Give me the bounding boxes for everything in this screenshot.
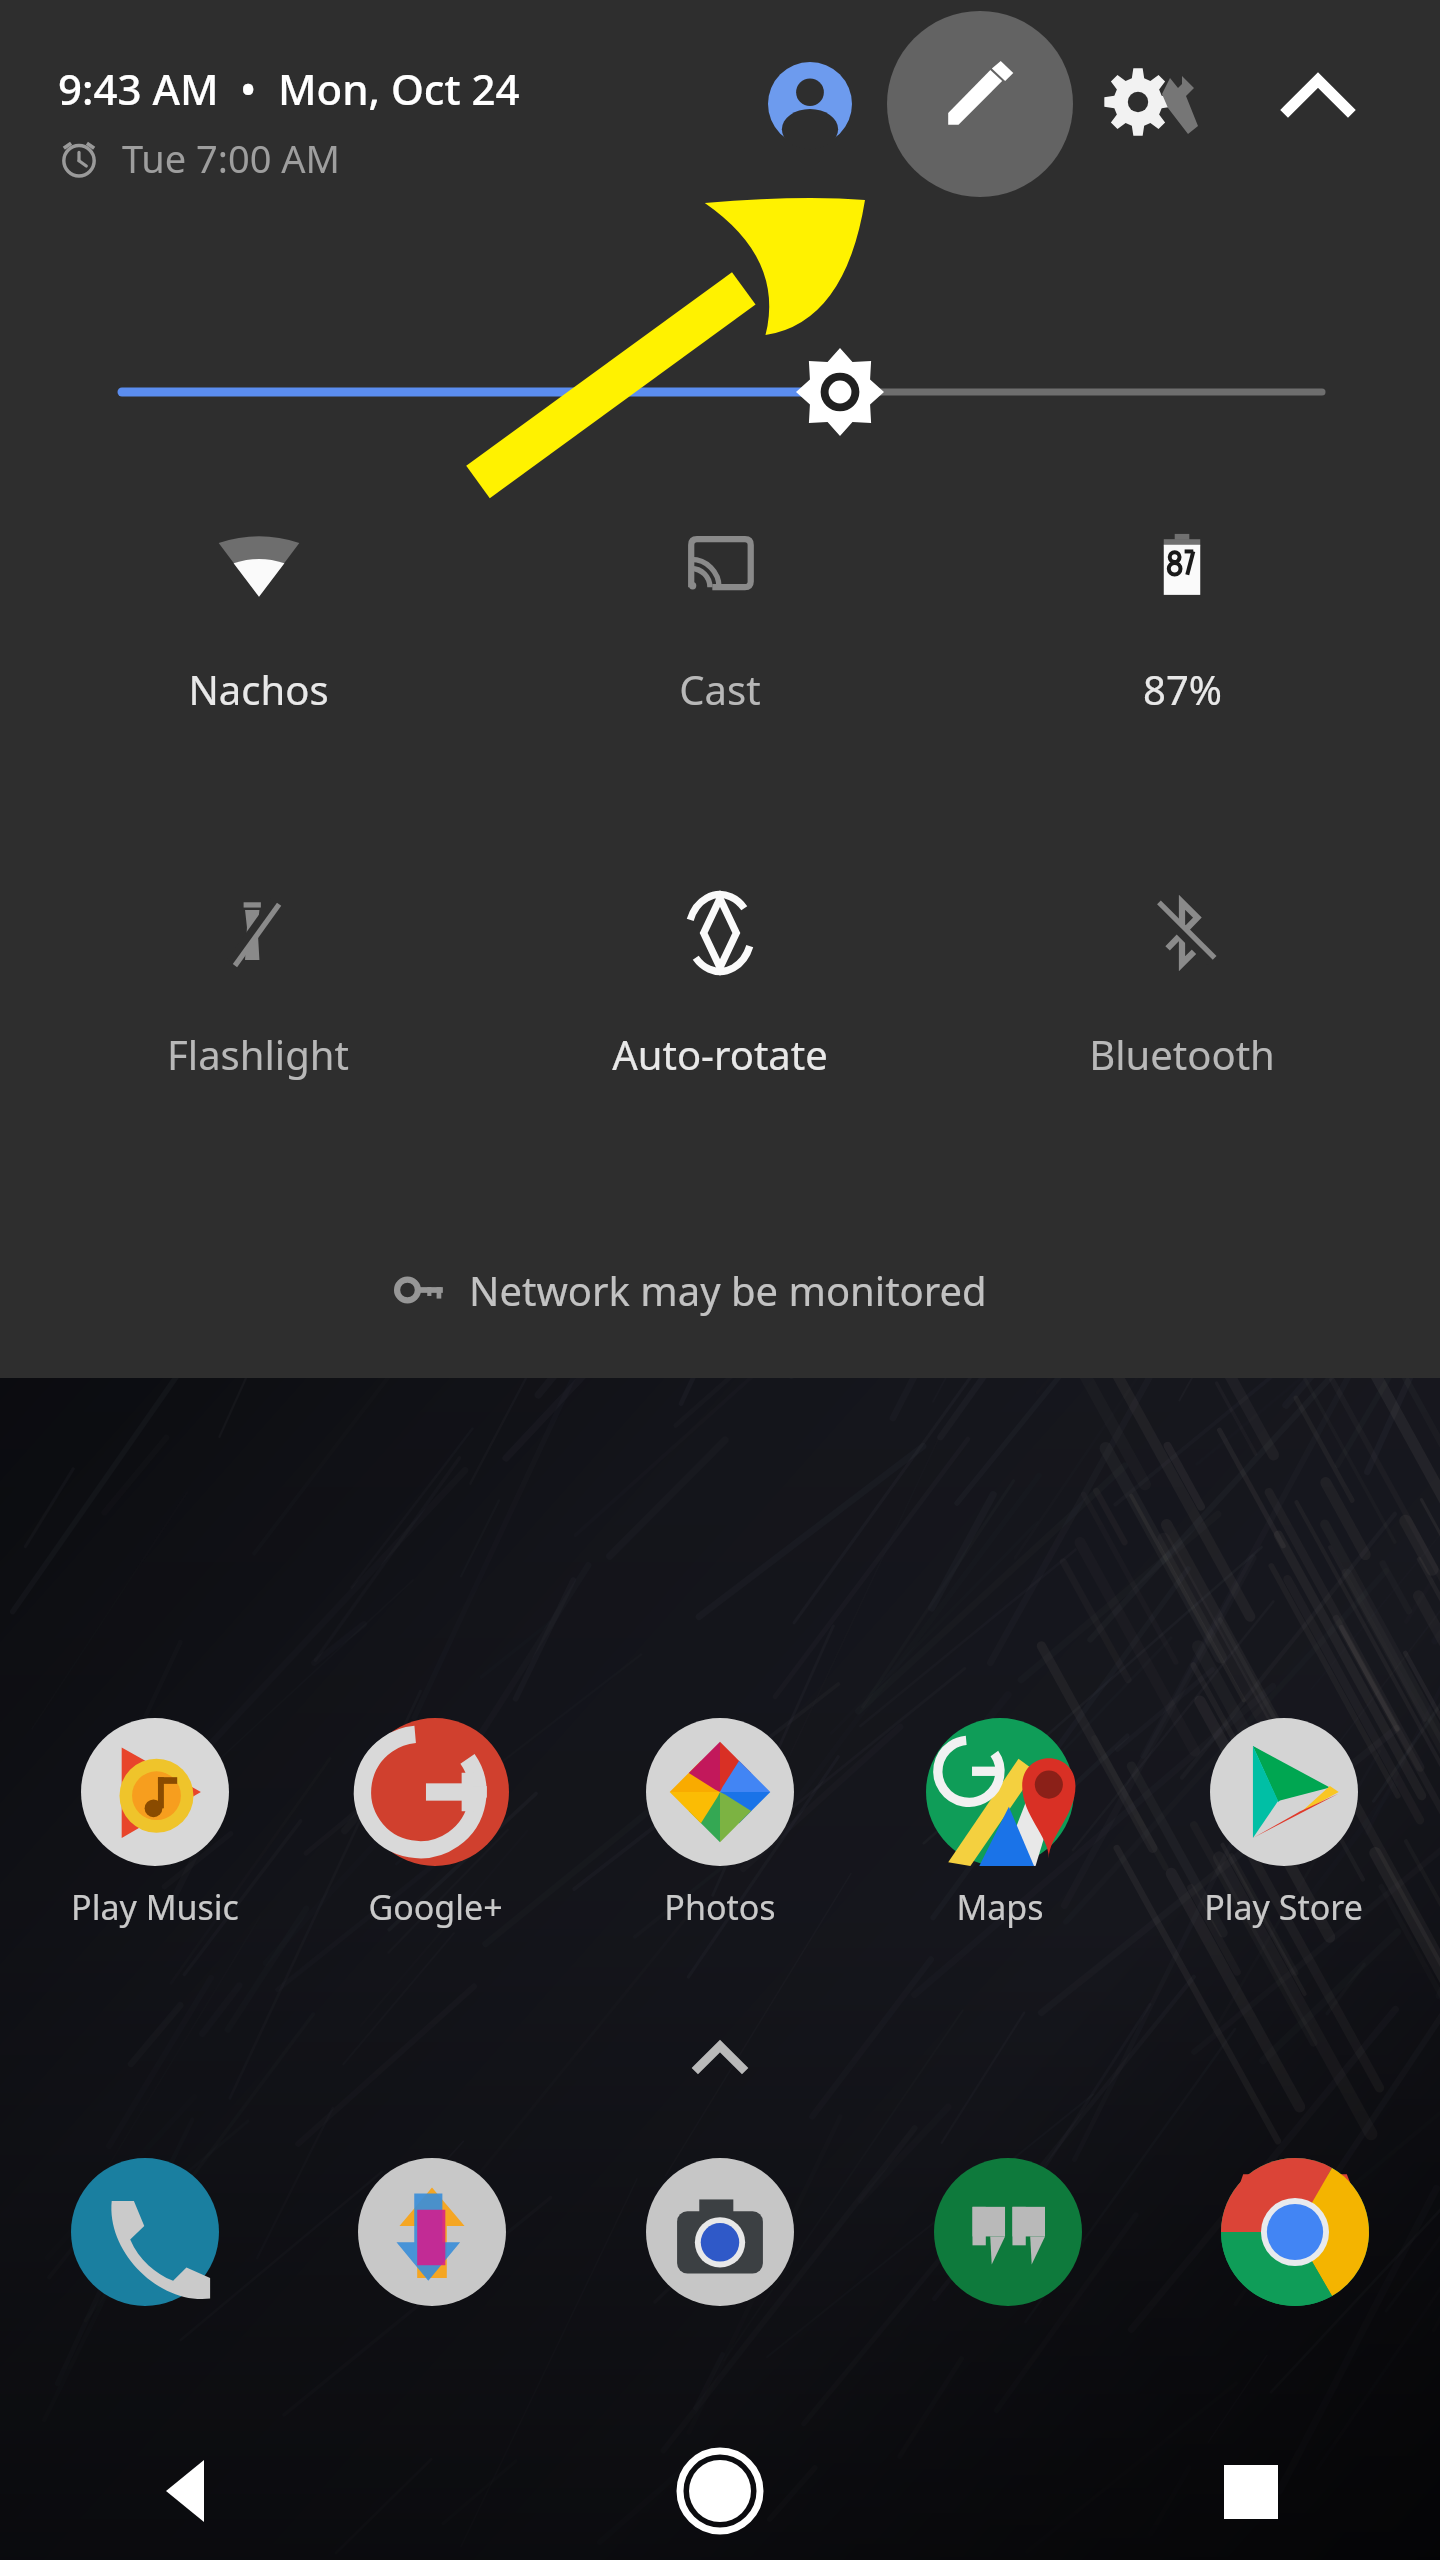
button[interactable]: Play Store bbox=[1179, 1718, 1387, 1968]
staticText: Network may be monitored bbox=[469, 1263, 987, 1317]
button[interactable]: Collapse bbox=[1270, 54, 1366, 150]
button[interactable]: Photos bbox=[616, 1718, 824, 1968]
staticText: Flashlight bbox=[167, 1027, 349, 1081]
staticText: Photos bbox=[664, 1884, 776, 1930]
button[interactable]: Play Music bbox=[51, 1718, 259, 1968]
button[interactable]: Cast bbox=[510, 520, 930, 780]
button[interactable]: Maps bbox=[896, 1718, 1104, 1968]
button[interactable]: Recent apps bbox=[1190, 2430, 1310, 2550]
staticText: Tue 7:00 AM bbox=[122, 132, 341, 184]
button[interactable]: snapseed bbox=[328, 2158, 536, 2328]
button[interactable]: Home bbox=[660, 2430, 780, 2550]
button[interactable]: User profile bbox=[768, 62, 852, 146]
staticText: Play Store bbox=[1204, 1884, 1363, 1930]
staticText: Auto-rotate bbox=[612, 1027, 828, 1081]
staticText: Nachos bbox=[188, 662, 329, 716]
button[interactable]: Network may be monitored bbox=[395, 1245, 987, 1335]
button[interactable]: Settings bbox=[1100, 56, 1210, 148]
button[interactable]: Open app drawer bbox=[690, 2028, 750, 2088]
button[interactable]: Auto-rotate bbox=[510, 885, 930, 1145]
button[interactable]: 87% bbox=[972, 520, 1392, 780]
button[interactable]: Bluetooth bbox=[972, 885, 1392, 1145]
button[interactable]: Back bbox=[130, 2430, 250, 2550]
button[interactable]: Flashlight bbox=[48, 885, 468, 1145]
staticText: Bluetooth bbox=[1089, 1027, 1275, 1081]
staticText: Cast bbox=[679, 662, 761, 716]
staticText: Play Music bbox=[71, 1884, 239, 1930]
button[interactable]: camera bbox=[616, 2158, 824, 2328]
staticText: Maps bbox=[956, 1884, 1044, 1930]
button[interactable]: hangouts bbox=[904, 2158, 1112, 2328]
staticText: 87% bbox=[1143, 662, 1222, 716]
staticText: Google+ bbox=[368, 1884, 503, 1930]
button[interactable]: Nachos bbox=[48, 520, 468, 780]
staticText: 9:43 AM • Mon, Oct 24 bbox=[58, 60, 520, 117]
button[interactable]: Brightness bbox=[100, 340, 1440, 450]
button[interactable]: Google+ bbox=[331, 1718, 539, 1968]
button[interactable]: chrome bbox=[1191, 2158, 1399, 2328]
button[interactable]: phone bbox=[41, 2158, 249, 2328]
button[interactable]: Edit bbox=[887, 11, 1073, 197]
button[interactable]: Tue 7:00 AM bbox=[56, 132, 341, 184]
